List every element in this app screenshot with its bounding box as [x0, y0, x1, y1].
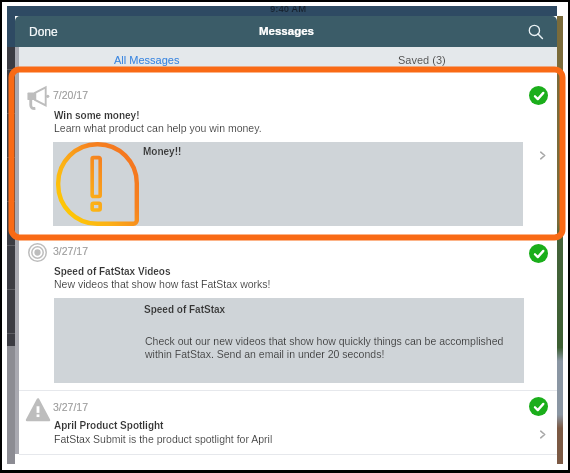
staticText: New videos that show how fast FatStax wo… [54, 278, 271, 290]
staticText: Win some money! [54, 110, 140, 121]
button[interactable]: Mark as read [529, 86, 548, 105]
staticText: within FatStax. Send an email in under 2… [145, 348, 385, 360]
staticText: April Product Spotlight [54, 420, 164, 431]
staticText: Speed of FatStax Videos [54, 266, 171, 277]
button[interactable]: Done [18, 16, 69, 47]
other: Open message [537, 150, 548, 161]
button[interactable]: All Messages [19, 47, 275, 70]
staticText: Learn what product can help you win mone… [54, 122, 262, 134]
staticText: Done [29, 25, 58, 38]
staticText: 3/27/17 [53, 245, 89, 257]
button[interactable]: 3/27/17 [19, 391, 557, 457]
staticText: Check out our new videos that show how q… [145, 335, 504, 347]
button[interactable]: Mark as read [529, 397, 548, 416]
staticText: 7/20/17 [53, 89, 89, 101]
staticText: 9:40 AM [270, 3, 307, 13]
staticText: Messages [259, 25, 314, 38]
staticText: FatStax Submit is the product spotlight … [54, 433, 273, 445]
button[interactable]: Mark as read [529, 244, 548, 263]
staticText: All Messages [114, 54, 180, 66]
staticText: Money!! [143, 146, 182, 157]
staticText: Speed of FatStax [144, 304, 226, 315]
button[interactable]: Saved (3) [275, 47, 557, 70]
staticText: Saved (3) [398, 54, 446, 66]
staticText: 3/27/17 [53, 401, 89, 413]
button[interactable]: 3/27/17 [19, 238, 557, 391]
button[interactable]: 7/20/17 [19, 75, 557, 232]
other: Open message [537, 429, 548, 440]
button[interactable]: Search [521, 17, 551, 47]
